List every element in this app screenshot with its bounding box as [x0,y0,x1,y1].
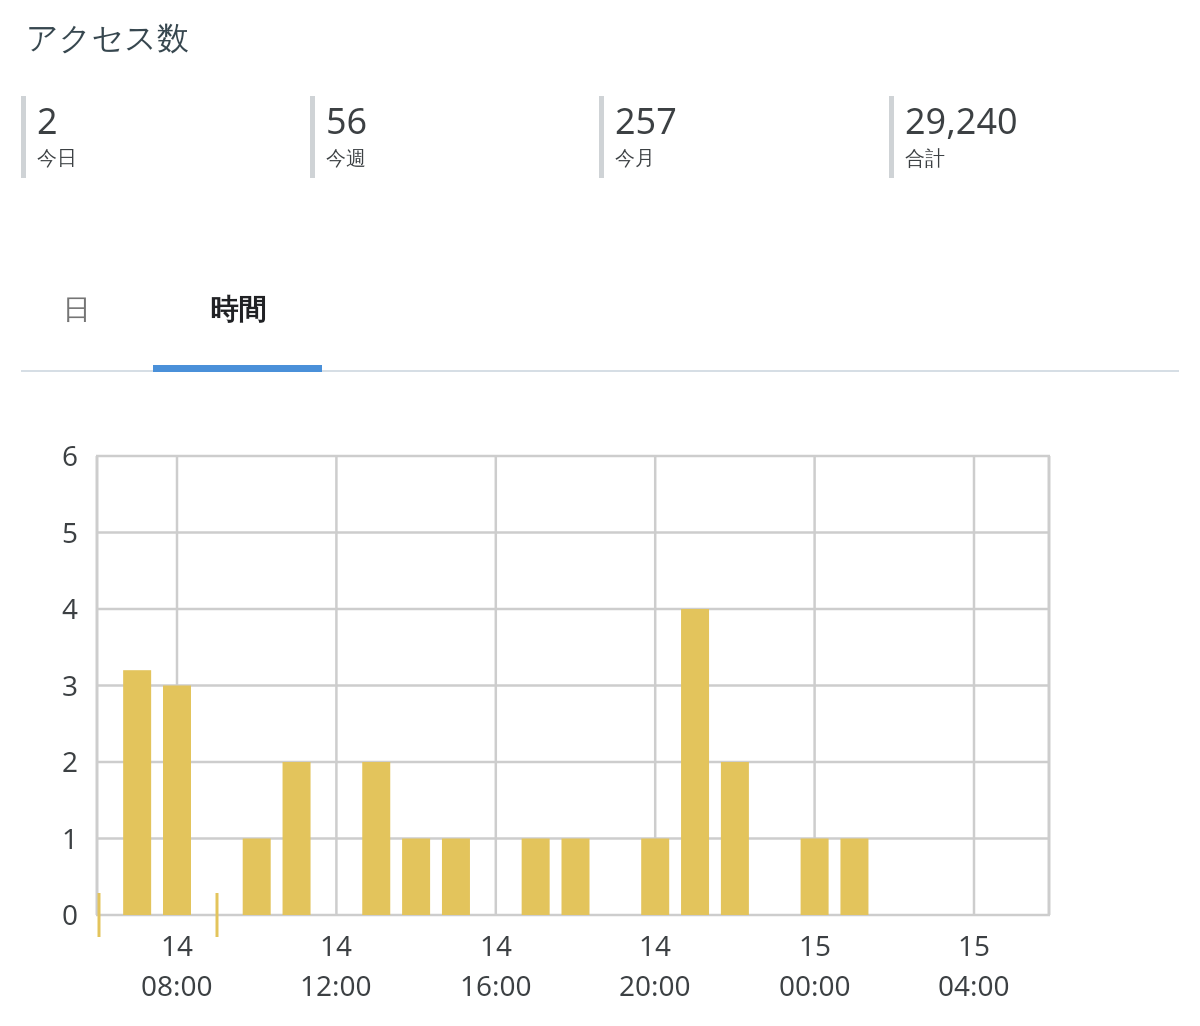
staticText: 今日 [37,146,77,171]
staticText: 29,240 [905,96,1018,145]
staticText: 04:00 [938,966,1010,1004]
staticText: アクセス数 [26,18,189,58]
staticText: 00:00 [779,966,851,1004]
button[interactable]: 日 [0,264,153,354]
staticText: 14 [639,926,672,964]
staticText: 今週 [326,146,366,171]
staticText: 0 [46,895,78,933]
staticText: 14 [480,926,513,964]
staticText: 2 [37,96,58,145]
staticText: 合計 [905,146,945,171]
staticText: 257 [615,96,677,145]
staticText: 日 [63,292,91,327]
staticText: 08:00 [141,966,213,1004]
staticText: 16:00 [460,966,532,1004]
staticText: 12:00 [300,966,372,1004]
staticText: 1 [46,819,78,857]
staticText: 5 [46,513,78,551]
staticText: 3 [46,666,78,704]
staticText: 14 [161,926,194,964]
button[interactable]: 時間 [153,264,322,354]
staticText: 6 [46,436,78,474]
staticText: 時間 [210,292,266,327]
staticText: 4 [46,589,78,627]
staticText: 15 [799,926,832,964]
staticText: 56 [326,96,368,145]
staticText: 20:00 [619,966,691,1004]
staticText: 2 [46,742,78,780]
staticText: 15 [958,926,991,964]
staticText: 今月 [615,146,655,171]
staticText: 14 [320,926,353,964]
